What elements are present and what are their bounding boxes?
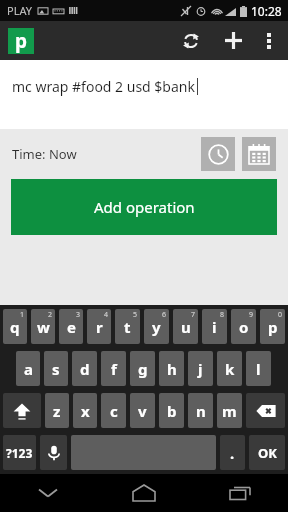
staticText: 8: [220, 310, 225, 320]
button[interactable]: b: [159, 393, 184, 428]
button[interactable]: OK: [249, 435, 285, 470]
button[interactable]: m: [217, 393, 242, 428]
button[interactable]: i: [202, 309, 227, 344]
staticText: 6: [162, 310, 167, 320]
button[interactable]: Pick time: [201, 137, 235, 171]
button[interactable]: u: [173, 309, 198, 344]
staticText: p: [268, 317, 278, 337]
staticText: y: [152, 317, 161, 337]
staticText: f: [111, 359, 117, 379]
staticText: 0: [278, 310, 283, 320]
staticText: a: [24, 359, 33, 379]
staticText: d: [80, 359, 90, 379]
button[interactable]: App logo: [8, 28, 34, 54]
button[interactable]: d: [72, 351, 97, 386]
button[interactable]: Recents: [192, 474, 288, 512]
staticText: v: [138, 401, 147, 421]
staticText: 9: [249, 310, 254, 320]
staticText: 7: [191, 310, 196, 320]
button[interactable]: o: [231, 309, 256, 344]
staticText: c: [110, 401, 118, 421]
button[interactable]: s: [44, 351, 68, 386]
staticText: j: [198, 359, 203, 379]
staticText: 3: [76, 310, 81, 320]
button[interactable]: Shift: [3, 393, 41, 428]
button[interactable]: Home: [96, 474, 192, 512]
button[interactable]: t: [115, 309, 140, 344]
button[interactable]: q: [3, 309, 27, 344]
staticText: n: [196, 401, 206, 421]
staticText: x: [81, 401, 90, 421]
button[interactable]: g: [130, 351, 155, 386]
staticText: OK: [258, 444, 277, 462]
button[interactable]: ?123: [3, 435, 36, 470]
button[interactable]: x: [73, 393, 97, 428]
button[interactable]: Sync: [170, 21, 212, 60]
button[interactable]: Voice input: [40, 435, 67, 470]
button[interactable]: j: [188, 351, 213, 386]
button[interactable]: y: [144, 309, 169, 344]
staticText: i: [212, 317, 217, 337]
staticText: Time: Now: [12, 145, 77, 163]
staticText: 10:28: [251, 3, 282, 19]
staticText: 1: [20, 310, 25, 320]
staticText: t: [124, 317, 131, 337]
staticText: r: [96, 317, 103, 337]
staticText: q: [10, 317, 20, 337]
staticText: k: [225, 359, 235, 379]
staticText: h: [167, 359, 177, 379]
staticText: 4: [104, 310, 109, 320]
staticText: ?123: [6, 445, 33, 461]
staticText: 2: [48, 310, 53, 320]
button[interactable]: Backspace: [246, 393, 285, 428]
staticText: s: [52, 359, 60, 379]
staticText: g: [138, 359, 148, 379]
button[interactable]: z: [45, 393, 69, 428]
button[interactable]: Add: [212, 21, 254, 60]
staticText: b: [167, 401, 177, 421]
staticText: u: [181, 317, 191, 337]
button[interactable]: .: [220, 435, 245, 470]
staticText: mc wrap #food 2 usd $bank: [12, 77, 195, 96]
button[interactable]: h: [159, 351, 184, 386]
button[interactable]: v: [130, 393, 155, 428]
button[interactable]: Pick date: [242, 137, 276, 171]
button[interactable]: w: [31, 309, 55, 344]
button[interactable]: f: [101, 351, 126, 386]
button[interactable]: Back: [0, 474, 96, 512]
button[interactable]: e: [59, 309, 83, 344]
button[interactable]: c: [101, 393, 126, 428]
staticText: l: [256, 359, 261, 379]
staticText: PLAY: [7, 3, 33, 18]
staticText: 5: [133, 310, 138, 320]
button[interactable]: l: [246, 351, 271, 386]
button[interactable]: p: [260, 309, 285, 344]
staticText: z: [53, 401, 61, 421]
button[interactable]: Add operation: [11, 179, 277, 235]
button[interactable]: n: [188, 393, 213, 428]
button[interactable]: a: [16, 351, 40, 386]
staticText: e: [67, 317, 76, 337]
staticText: Add operation: [94, 197, 195, 217]
staticText: m: [222, 401, 237, 421]
staticText: p: [15, 28, 28, 54]
staticText: .: [230, 443, 235, 463]
staticText: w: [37, 317, 50, 337]
button[interactable]: k: [217, 351, 242, 386]
button[interactable]: More options: [254, 21, 284, 60]
staticText: o: [239, 317, 249, 337]
button[interactable]: r: [87, 309, 111, 344]
